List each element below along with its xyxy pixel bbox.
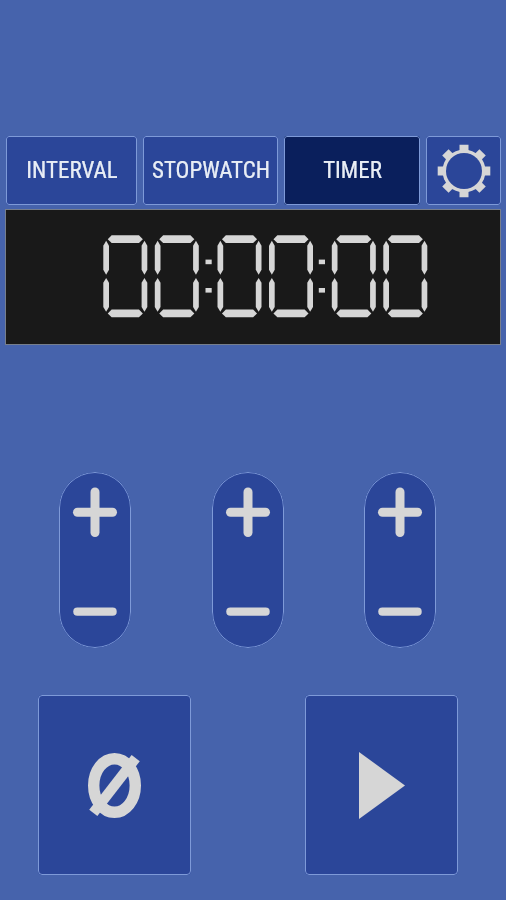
staticText: STOPWATCH xyxy=(152,157,270,184)
other: 00:00:00 xyxy=(6,210,500,344)
button[interactable]: STOPWATCH xyxy=(143,136,278,205)
button[interactable]: Reset xyxy=(38,695,191,875)
button[interactable]: Start xyxy=(305,695,458,875)
button[interactable]: Adjust Minutes xyxy=(212,472,284,648)
button[interactable]: TIMER xyxy=(284,136,420,205)
button[interactable]: Adjust Hours xyxy=(59,472,131,648)
button[interactable]: Adjust Seconds xyxy=(364,472,436,648)
button[interactable]: INTERVAL xyxy=(6,136,137,205)
staticText: INTERVAL xyxy=(26,157,118,184)
staticText: TIMER xyxy=(323,157,382,184)
button[interactable]: Settings xyxy=(426,136,501,205)
